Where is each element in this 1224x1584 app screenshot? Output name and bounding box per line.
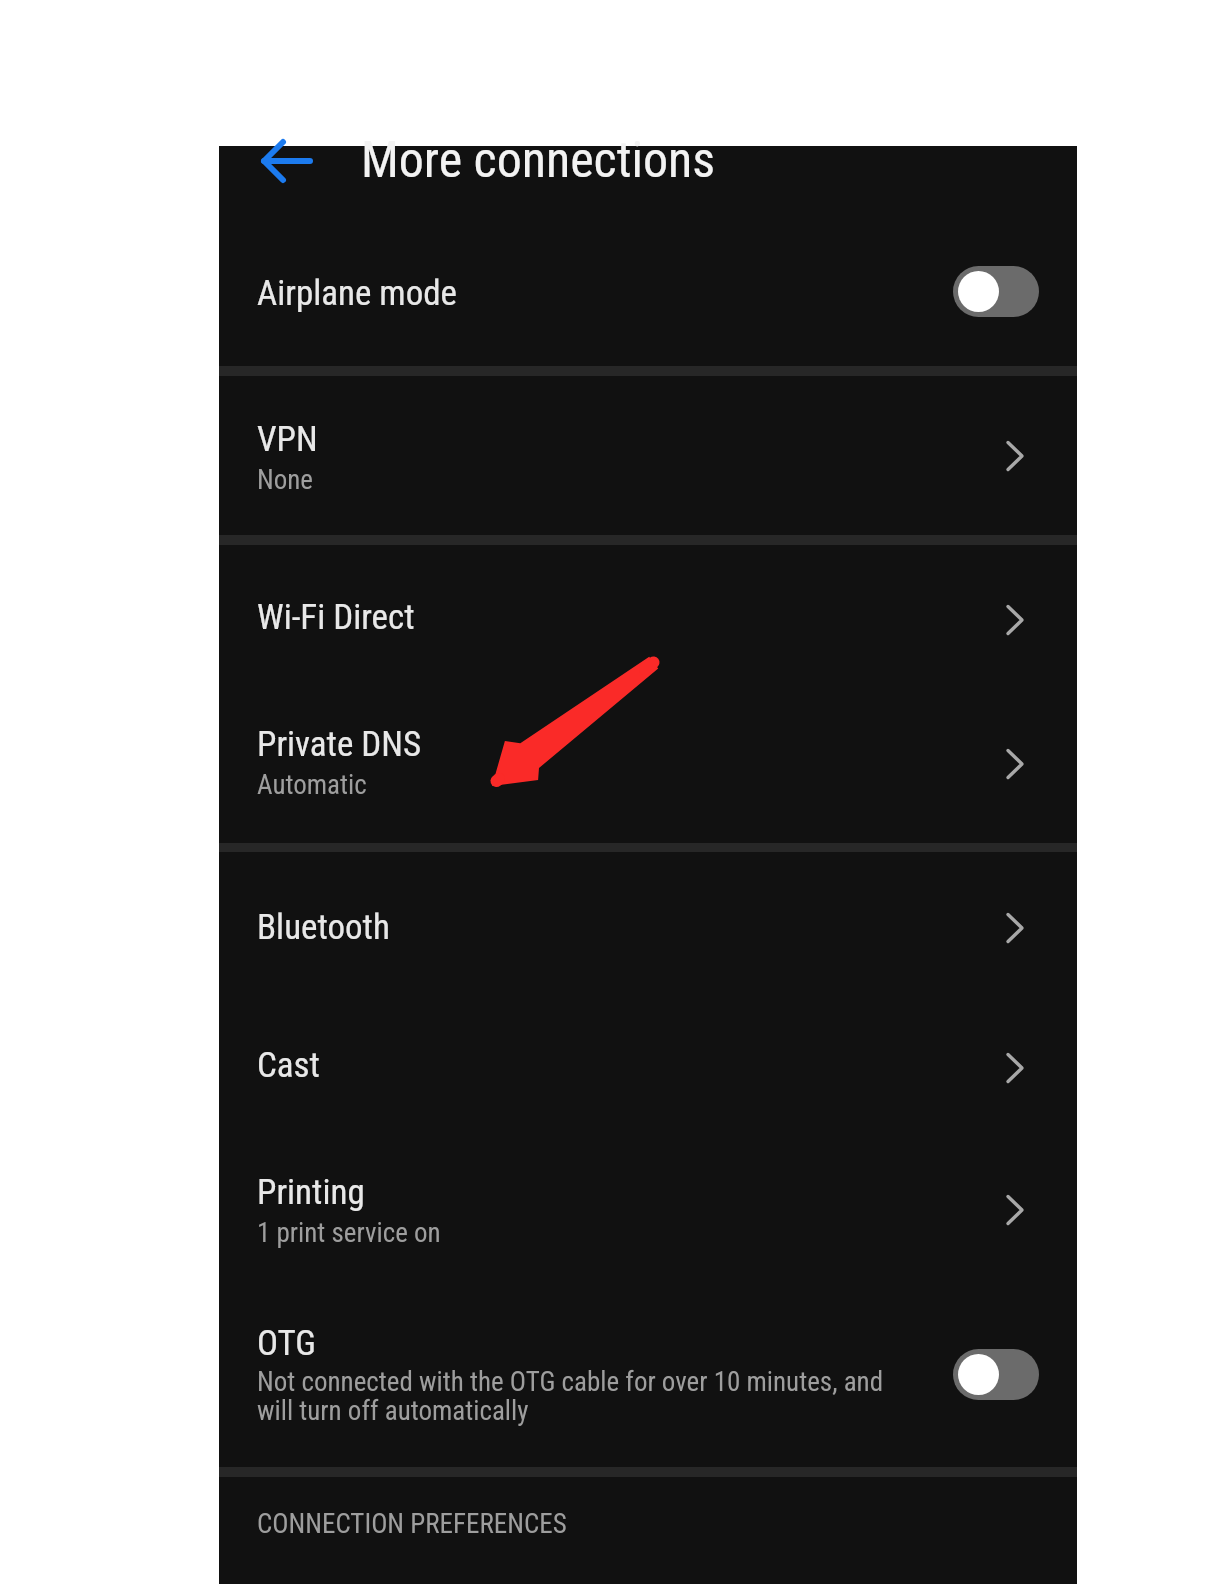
- button[interactable]: VPN: [219, 376, 1077, 535]
- staticText: Printing: [257, 1172, 365, 1213]
- staticText: Private DNS: [257, 724, 422, 765]
- staticText: OTG: [257, 1323, 316, 1364]
- button[interactable]: Wi-Fi Direct: [219, 545, 1077, 694]
- staticText: Not connected with the OTG cable for ove…: [257, 1366, 884, 1427]
- button[interactable]: Airplane mode, off: [953, 266, 1039, 317]
- button[interactable]: OTG, off: [953, 1349, 1039, 1400]
- staticText: Bluetooth: [257, 907, 390, 948]
- staticText: 1 print service on: [257, 1217, 441, 1249]
- button[interactable]: Airplane mode: [219, 203, 1077, 366]
- button[interactable]: Cast: [219, 990, 1077, 1128]
- button[interactable]: OTG: [219, 1275, 1077, 1467]
- staticText: CONNECTION PREFERENCES: [257, 1508, 567, 1540]
- staticText: VPN: [257, 419, 318, 460]
- staticText: Automatic: [257, 769, 367, 801]
- button[interactable]: Navigate up: [256, 131, 316, 191]
- button[interactable]: Private DNS: [219, 694, 1077, 843]
- button[interactable]: Printing: [219, 1128, 1077, 1275]
- staticText: Cast: [257, 1045, 320, 1086]
- staticText: Airplane mode: [257, 273, 458, 314]
- staticText: Wi-Fi Direct: [257, 597, 415, 638]
- staticText: More connections: [361, 131, 716, 190]
- button[interactable]: Bluetooth: [219, 852, 1077, 990]
- staticText: None: [257, 464, 314, 496]
